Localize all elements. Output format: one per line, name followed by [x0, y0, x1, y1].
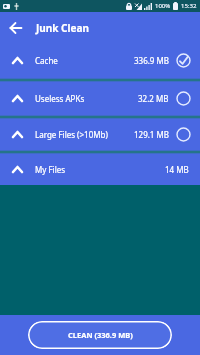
button[interactable]: Cache: [0, 43, 200, 78]
staticText: Large Files (>10Mb): [35, 129, 108, 140]
staticText: Junk Clean: [36, 21, 89, 35]
staticText: My Files: [35, 164, 66, 175]
staticText: Useless APKs: [35, 93, 85, 104]
staticText: 100%: [155, 2, 171, 10]
button[interactable]: Large Files (>10Mb): [0, 119, 200, 150]
staticText: CLEAN (336.9 MB): [68, 330, 133, 340]
button[interactable]: My Files: [0, 154, 200, 185]
staticText: 14 MB: [165, 164, 189, 175]
staticText: Cache: [35, 55, 58, 66]
staticText: 15:32: [181, 2, 197, 10]
staticText: 336.9 MB: [134, 55, 169, 66]
staticText: 129.1 MB: [134, 129, 169, 140]
staticText: 32.2 MB: [138, 93, 169, 104]
button[interactable]: [0, 12, 31, 43]
button[interactable]: Useless APKs: [0, 82, 200, 115]
button[interactable]: CLEAN (336.9 MB): [28, 321, 172, 349]
